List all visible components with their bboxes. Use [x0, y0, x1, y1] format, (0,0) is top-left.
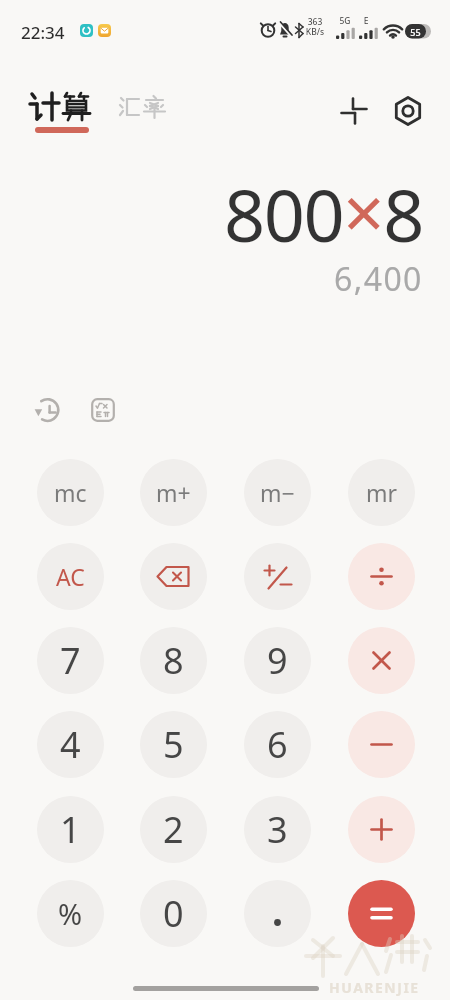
button[interactable]: [33, 395, 63, 425]
button[interactable]: AC: [37, 543, 104, 610]
staticText: mr: [366, 477, 398, 508]
staticText: 6: [267, 720, 288, 769]
staticText: HUARENJIE: [329, 978, 420, 997]
button[interactable]: [393, 96, 423, 126]
staticText: 800×8: [224, 162, 423, 254]
staticText: 2: [163, 805, 184, 854]
button[interactable]: [340, 97, 368, 125]
button[interactable]: [244, 543, 311, 610]
staticText: 7: [60, 636, 81, 685]
button[interactable]: 9: [244, 627, 311, 694]
button[interactable]: [119, 96, 165, 120]
button[interactable]: %: [37, 880, 104, 947]
button[interactable]: 6: [244, 711, 311, 778]
button[interactable]: 8: [140, 627, 207, 694]
staticText: 5: [163, 720, 184, 769]
staticText: %: [58, 894, 83, 933]
button[interactable]: [348, 627, 415, 694]
button[interactable]: mc: [37, 459, 104, 526]
button[interactable]: [244, 880, 311, 947]
staticText: mc: [54, 477, 87, 508]
button[interactable]: [29, 92, 91, 134]
staticText: 8: [163, 636, 184, 685]
staticText: KB/s: [303, 26, 327, 37]
staticText: m−: [260, 477, 295, 508]
button[interactable]: [348, 880, 415, 947]
staticText: 4: [60, 720, 81, 769]
staticText: E: [359, 15, 373, 26]
button[interactable]: 7: [37, 627, 104, 694]
staticText: 6,400: [334, 257, 423, 301]
staticText: 1: [60, 805, 81, 854]
button[interactable]: [348, 543, 415, 610]
button[interactable]: 0: [140, 880, 207, 947]
staticText: 0: [163, 889, 184, 938]
button[interactable]: [348, 796, 415, 863]
staticText: 3: [267, 805, 288, 854]
staticText: m+: [156, 477, 191, 508]
staticText: 9: [267, 636, 288, 685]
staticText: 22:34: [21, 21, 65, 44]
button[interactable]: mr: [348, 459, 415, 526]
staticText: 363: [303, 16, 327, 27]
button[interactable]: 2: [140, 796, 207, 863]
staticText: 55: [405, 26, 426, 38]
button[interactable]: 3: [244, 796, 311, 863]
button[interactable]: m−: [244, 459, 311, 526]
staticText: 5G: [336, 15, 354, 26]
button[interactable]: m+: [140, 459, 207, 526]
button[interactable]: [140, 543, 207, 610]
button[interactable]: [348, 711, 415, 778]
staticText: AC: [56, 561, 85, 592]
button[interactable]: 5: [140, 711, 207, 778]
button[interactable]: 4: [37, 711, 104, 778]
button[interactable]: [91, 398, 115, 422]
button[interactable]: 1: [37, 796, 104, 863]
